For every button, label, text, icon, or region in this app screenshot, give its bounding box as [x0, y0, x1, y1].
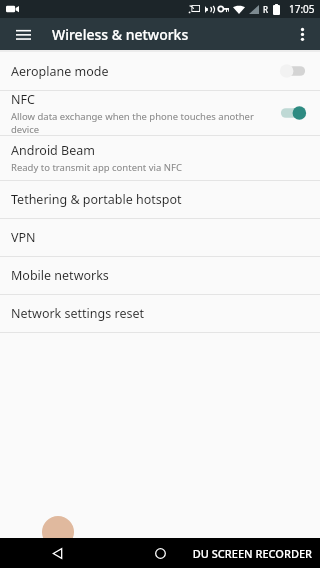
staticText: Tethering & portable hotspot [11, 191, 182, 208]
button[interactable]: Home [145, 538, 175, 568]
staticText: VPN [11, 229, 36, 246]
staticText: Ready to transmit app content via NFC [11, 161, 183, 174]
button[interactable]: Tethering & portable hotspot [0, 181, 320, 218]
button[interactable]: NFC [0, 91, 320, 135]
staticText: Aeroplane mode [11, 63, 109, 80]
staticText: 17:05 [289, 2, 315, 16]
button[interactable]: VPN [0, 219, 320, 256]
staticText: NFC [11, 91, 35, 108]
button[interactable]: More options [284, 18, 320, 50]
staticText: Allow data exchange when the phone touch… [11, 110, 278, 135]
button[interactable]: Screen recorder bubble [42, 516, 74, 548]
button[interactable]: On [278, 103, 308, 123]
button[interactable]: Mobile networks [0, 257, 320, 294]
staticText: Mobile networks [11, 267, 109, 284]
button[interactable]: Navigation drawer [0, 18, 46, 50]
staticText: Network settings reset [11, 305, 144, 322]
button[interactable]: Aeroplane mode [0, 52, 320, 90]
staticText: Android Beam [11, 142, 95, 159]
button[interactable]: Network settings reset [0, 295, 320, 332]
staticText: DU SCREEN RECORDER [192, 546, 312, 561]
staticText: R [263, 4, 269, 15]
button[interactable]: Off [278, 61, 308, 81]
staticText: Wireless & networks [52, 25, 189, 44]
button[interactable]: Back [42, 538, 72, 568]
button[interactable]: Android Beam [0, 136, 320, 180]
